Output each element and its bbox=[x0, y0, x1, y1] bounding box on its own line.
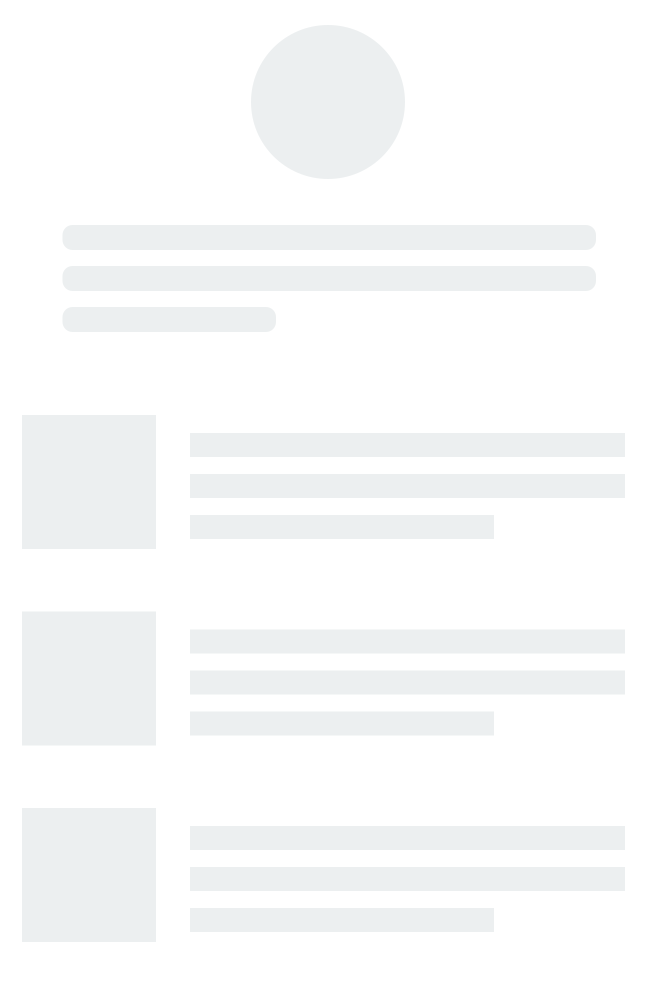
button[interactable]: Loading content bbox=[22, 611, 656, 745]
button[interactable]: Loading content bbox=[22, 415, 656, 549]
button[interactable]: Loading content bbox=[22, 808, 656, 942]
